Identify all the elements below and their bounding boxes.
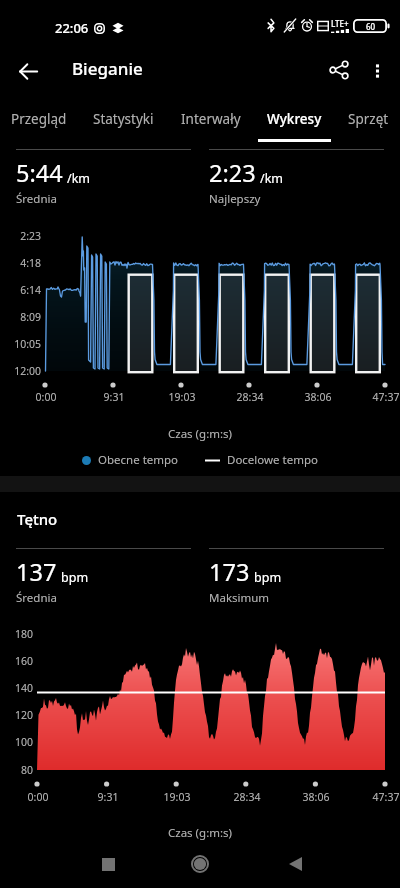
staticText: Obecne tempo (98, 452, 179, 468)
staticText: LTE+ (331, 18, 349, 29)
staticText: 22:06 (55, 19, 89, 37)
staticText: 5:44 (16, 157, 63, 189)
staticText: 12:00 (0, 364, 41, 378)
staticText: Bieganie (72, 57, 143, 80)
staticText: 160 (0, 654, 33, 668)
staticText: 140 (0, 681, 33, 695)
staticText: 38:06 (286, 790, 346, 804)
button[interactable]: Statystyki (84, 96, 163, 142)
staticText: Interwały (181, 110, 241, 128)
button[interactable]: Home (180, 844, 220, 884)
staticText: 2:23 (209, 157, 256, 189)
staticText: 28:34 (217, 790, 277, 804)
staticText: bpm (254, 569, 282, 586)
staticText: 10:05 (0, 337, 41, 351)
staticText: 8:09 (0, 310, 41, 324)
staticText: 38:06 (288, 390, 348, 404)
button[interactable]: Back (275, 844, 315, 884)
staticText: 47:37 (356, 390, 400, 404)
staticText: 100 (0, 735, 33, 749)
staticText: 180 (0, 627, 33, 641)
staticText: 120 (0, 708, 33, 722)
staticText: 19:03 (147, 790, 207, 804)
staticText: 4:18 (0, 256, 41, 270)
button[interactable]: Interwały (172, 96, 250, 142)
staticText: Sprzęt (348, 110, 389, 128)
staticText: Czas (g:m:s) (0, 825, 400, 841)
staticText: Statystyki (93, 110, 154, 128)
staticText: Docelowe tempo (227, 452, 318, 468)
button[interactable]: Recent apps (88, 844, 128, 884)
button[interactable]: Sprzęt (339, 96, 398, 142)
staticText: 60 (366, 21, 376, 32)
staticText: /km (260, 170, 284, 187)
staticText: Czas (g:m:s) (0, 426, 400, 442)
staticText: 47:37 (356, 790, 400, 804)
staticText: Maksimum (209, 590, 270, 606)
button[interactable]: Share (320, 51, 358, 89)
staticText: 6:14 (0, 283, 41, 297)
staticText: 80 (0, 763, 33, 777)
staticText: 0:00 (8, 790, 68, 804)
staticText: 19:03 (152, 390, 212, 404)
staticText: Średnia (16, 191, 57, 207)
staticText: 137 (16, 556, 57, 588)
staticText: Tętno (17, 509, 58, 529)
staticText: Przegląd (11, 110, 67, 128)
staticText: Wykresy (267, 110, 322, 128)
button[interactable]: Wykresy (258, 96, 331, 142)
staticText: /km (67, 170, 91, 187)
staticText: 0:00 (16, 390, 76, 404)
button[interactable]: More options (358, 51, 396, 89)
staticText: 2:23 (0, 229, 41, 243)
staticText: Najlepszy (209, 191, 261, 207)
staticText: 173 (209, 556, 250, 588)
button[interactable]: Przegląd (2, 96, 76, 142)
staticText: bpm (61, 569, 89, 586)
staticText: 9:31 (78, 790, 138, 804)
button[interactable]: Back (10, 53, 46, 89)
staticText: 9:31 (84, 390, 144, 404)
staticText: Średnia (16, 590, 57, 606)
staticText: 28:34 (220, 390, 280, 404)
